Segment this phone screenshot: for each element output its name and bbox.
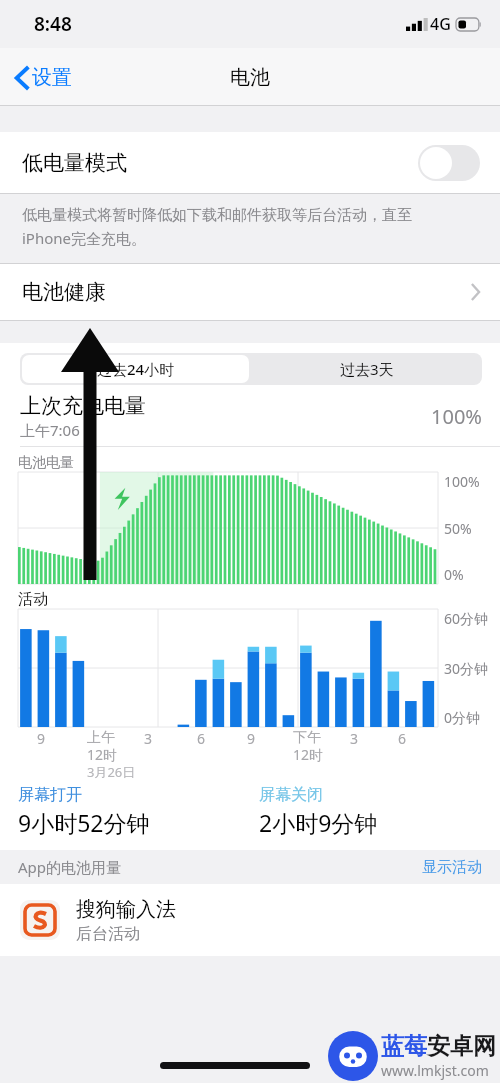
button[interactable]: 低电量模式 [0,132,500,194]
staticText: 0% [444,565,464,584]
staticText: 下午 12时 [293,729,324,764]
staticText: 上午7:06 [20,420,80,440]
staticText: 9 [247,729,256,748]
staticText: 活动 [18,590,48,609]
staticText: 蓝莓 [381,1032,427,1061]
staticText: 100% [431,403,482,430]
button[interactable]: 过去3天 [251,353,482,385]
button[interactable]: 搜狗输入法 [0,884,500,956]
staticText: 2小时9分钟 [259,807,378,838]
button[interactable]: 过去24小时 [22,355,249,383]
staticText: 6 [197,729,206,748]
staticText: 过去24小时 [97,359,175,379]
staticText: 上次充电电量 [20,393,146,419]
staticText: App的电池用量 [18,857,122,877]
staticText: 电池健康 [22,279,106,305]
staticText: 上午 12时 [87,729,118,764]
staticText: 8:48 [34,11,72,37]
staticText: 6 [398,729,407,748]
button[interactable]: 设置 [12,59,76,96]
staticText: 9 [37,729,46,748]
staticText: 搜狗输入法 [76,897,176,922]
staticText: 100% [444,472,480,491]
staticText: 50% [444,519,472,538]
staticText: 低电量模式将暂时降低如下载和邮件获取等后台活动，直至 iPhone完全充电。 [22,206,482,249]
staticText: 低电量模式 [22,150,127,176]
staticText: 3 [350,729,359,748]
staticText: 后台活动 [76,924,140,944]
staticText: 屏幕关闭 [259,785,323,805]
staticText: 3 [144,729,153,748]
staticText: 过去3天 [340,359,394,379]
staticText: 9小时52分钟 [18,807,150,838]
staticText: 安卓网 [427,1032,496,1061]
staticText: www.lmkjst.com [381,1061,489,1080]
staticText: 设置 [32,65,72,90]
staticText: 60分钟 [444,609,489,628]
button[interactable]: 显示活动 [422,858,482,877]
staticText: 4G [430,13,451,35]
staticText: 30分钟 [444,659,489,678]
staticText: 0分钟 [444,708,481,727]
staticText: 3月26日 [87,763,136,781]
staticText: 电池电量 [18,454,74,472]
button[interactable]: 低电量模式开关 [418,145,480,181]
staticText: 屏幕打开 [18,785,82,805]
staticText: 电池 [230,65,270,90]
button[interactable]: 电池健康 [0,263,500,321]
